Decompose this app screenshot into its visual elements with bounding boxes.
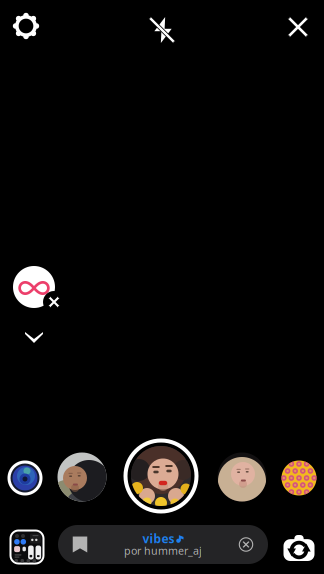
button[interactable]: Flash off	[136, 0, 188, 52]
button[interactable]: Save audio	[62, 525, 98, 564]
button[interactable]: Boomerang mode	[13, 266, 75, 322]
button[interactable]: Close	[272, 0, 324, 52]
button[interactable]: Flip camera	[278, 527, 320, 569]
button[interactable]: Pattern effect	[277, 456, 321, 500]
button[interactable]: Gallery	[5, 525, 49, 569]
button[interactable]: Remove audio	[228, 525, 264, 564]
button[interactable]: vibes por hummer_aj	[98, 525, 228, 564]
button[interactable]: Effect with dark hair	[54, 449, 110, 505]
button[interactable]: More effects	[18, 322, 62, 348]
button[interactable]: Selected effect	[121, 436, 201, 516]
button[interactable]: Camera settings	[0, 0, 52, 52]
button[interactable]: Effect with blonde hair	[214, 449, 270, 505]
staticText: vibes	[142, 530, 174, 546]
staticText: por hummer_aj	[124, 543, 202, 558]
button[interactable]: No effect	[3, 456, 47, 500]
